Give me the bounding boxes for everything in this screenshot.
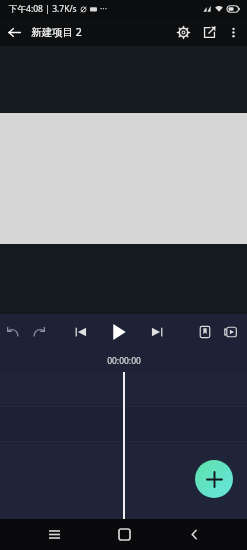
button[interactable]: Back xyxy=(177,519,211,550)
staticText: ··· xyxy=(100,3,107,15)
staticText: | 3.7K/s xyxy=(45,3,77,15)
button[interactable]: Add xyxy=(195,460,233,498)
button[interactable]: Home xyxy=(107,519,141,550)
staticText: 00:00:00 xyxy=(107,355,141,367)
button[interactable]: Back xyxy=(0,18,28,46)
button[interactable]: Settings xyxy=(170,19,196,45)
button[interactable]: Play xyxy=(104,317,134,347)
button[interactable]: Redo xyxy=(26,319,52,345)
button[interactable]: Bookmark xyxy=(192,319,218,345)
button[interactable]: Previous xyxy=(68,319,94,345)
button[interactable]: Recents xyxy=(37,519,71,550)
button[interactable]: Export xyxy=(196,19,222,45)
button[interactable]: Undo xyxy=(0,319,26,345)
button[interactable]: Add clip xyxy=(218,319,244,345)
staticText: 下午4:08 xyxy=(9,3,43,15)
button[interactable]: Next xyxy=(144,319,170,345)
staticText: 新建项目 2 xyxy=(31,25,82,39)
button[interactable]: More options xyxy=(222,21,244,43)
